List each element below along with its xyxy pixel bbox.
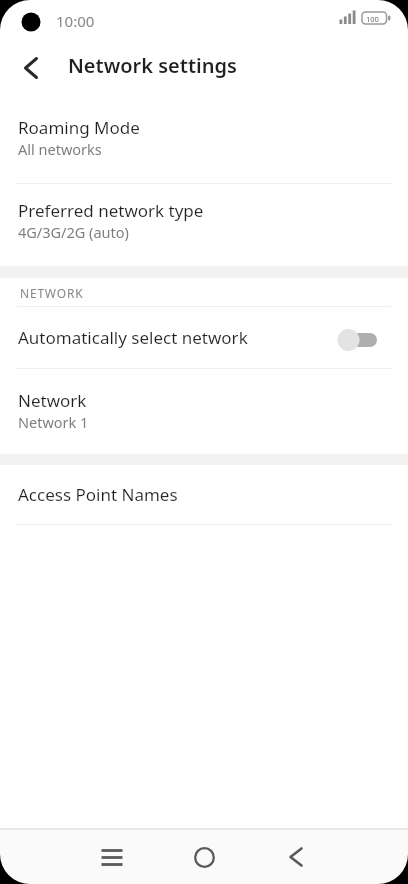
staticText: NETWORK <box>20 285 84 301</box>
staticText: Roaming Mode <box>18 116 140 139</box>
staticText: Automatically select network <box>18 326 248 349</box>
button[interactable] <box>266 830 322 884</box>
staticText: 100 <box>366 14 379 24</box>
button[interactable] <box>0 44 56 92</box>
staticText: Access Point Names <box>18 483 178 506</box>
staticText: 4G/3G/2G (auto) <box>18 222 129 242</box>
staticText: Network settings <box>68 52 237 79</box>
button[interactable]: Preferred network type <box>0 184 408 266</box>
staticText: Network <box>18 389 87 412</box>
button[interactable]: Automatically select network <box>0 307 408 368</box>
staticText: Preferred network type <box>18 199 204 222</box>
staticText: Network 1 <box>18 412 89 432</box>
staticText: 10:00 <box>56 11 95 31</box>
button[interactable]: Roaming Mode <box>0 100 408 183</box>
button[interactable] <box>176 830 232 884</box>
button[interactable]: Network <box>0 369 408 454</box>
button[interactable] <box>84 830 140 884</box>
staticText: All networks <box>18 139 102 159</box>
button[interactable]: Access Point Names <box>0 465 408 524</box>
